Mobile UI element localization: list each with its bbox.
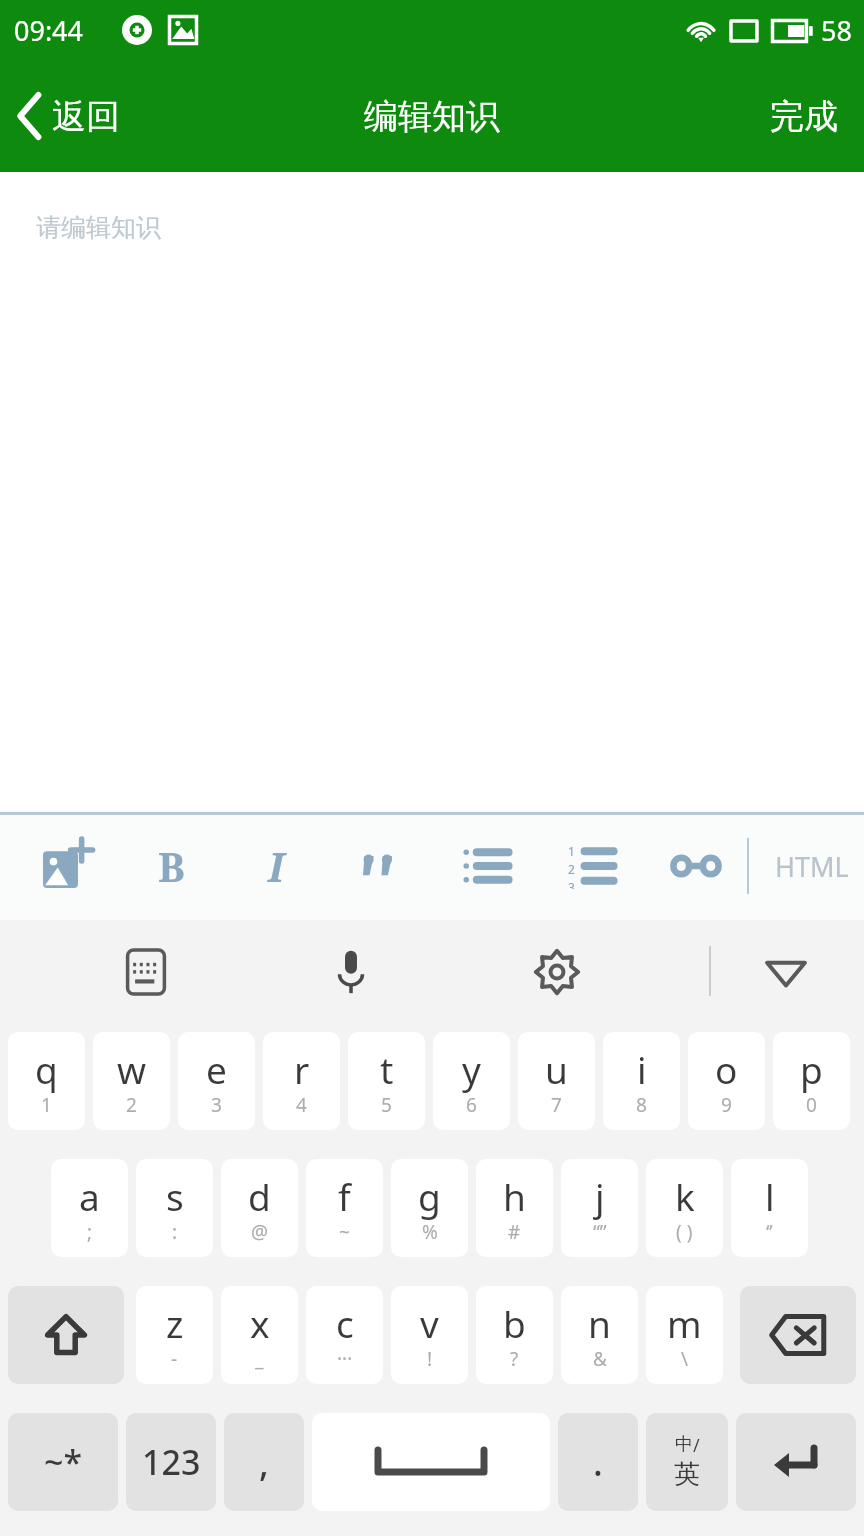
button[interactable]: m: [646, 1286, 723, 1384]
staticText: 返回: [52, 95, 120, 138]
button[interactable]: j: [561, 1159, 638, 1257]
button[interactable]: v: [391, 1286, 468, 1384]
button[interactable]: Link: [660, 830, 732, 902]
button[interactable]: e: [178, 1032, 255, 1130]
staticText: 2: [126, 1092, 137, 1118]
button[interactable]: x: [221, 1286, 298, 1384]
staticText: \: [681, 1346, 689, 1372]
staticText: l: [765, 1171, 775, 1221]
staticText: i: [637, 1044, 647, 1094]
staticText: ,: [259, 1438, 269, 1487]
button[interactable]: n: [561, 1286, 638, 1384]
staticText: 1: [41, 1092, 52, 1118]
staticText: 2: [568, 861, 575, 877]
button[interactable]: 完成: [744, 60, 864, 172]
staticText: d: [248, 1171, 271, 1221]
staticText: /: [693, 1433, 700, 1458]
button[interactable]: b: [476, 1286, 553, 1384]
button[interactable]: Comma: [224, 1413, 304, 1511]
staticText: ~: [339, 1219, 350, 1245]
staticText: 9: [721, 1092, 732, 1118]
button[interactable]: Insert image: [30, 830, 102, 902]
staticText: 3: [568, 879, 575, 889]
button[interactable]: c: [306, 1286, 383, 1384]
staticText: g: [418, 1171, 441, 1221]
button[interactable]: a: [51, 1159, 128, 1257]
staticText: h: [503, 1171, 526, 1221]
button[interactable]: HTML: [762, 830, 862, 902]
button[interactable]: Keyboard settings: [521, 936, 593, 1008]
staticText: m: [667, 1298, 702, 1348]
button[interactable]: u: [518, 1032, 595, 1130]
staticText: p: [800, 1044, 823, 1094]
staticText: 4: [296, 1092, 307, 1118]
staticText: e: [206, 1044, 227, 1094]
button[interactable]: w: [93, 1032, 170, 1130]
button[interactable]: o: [688, 1032, 765, 1130]
button[interactable]: Period: [558, 1413, 638, 1511]
button[interactable]: l: [731, 1159, 808, 1257]
button[interactable]: 返回: [0, 60, 146, 172]
button[interactable]: Bold: [135, 830, 207, 902]
button[interactable]: Voice input: [315, 936, 387, 1008]
staticText: f: [338, 1171, 351, 1221]
button[interactable]: Enter: [736, 1413, 856, 1511]
staticText: 编辑知识: [364, 95, 500, 138]
staticText: w: [117, 1044, 147, 1094]
button[interactable]: Switch Chinese English: [646, 1413, 728, 1511]
button[interactable]: q: [8, 1032, 85, 1130]
staticText: 1: [568, 843, 575, 859]
button[interactable]: Italic: [240, 830, 312, 902]
button[interactable]: g: [391, 1159, 468, 1257]
button[interactable]: Backspace: [740, 1286, 856, 1384]
staticText: #: [508, 1219, 521, 1245]
staticText: HTML: [775, 848, 849, 885]
button[interactable]: i: [603, 1032, 680, 1130]
staticText: 7: [551, 1092, 562, 1118]
button[interactable]: y: [433, 1032, 510, 1130]
button[interactable]: Keyboard layout: [110, 936, 182, 1008]
staticText: -: [171, 1346, 178, 1372]
staticText: ;: [87, 1219, 93, 1245]
button[interactable]: Symbols: [8, 1413, 118, 1511]
staticText: 3: [211, 1092, 222, 1118]
staticText: 09:44: [14, 12, 84, 49]
button[interactable]: Shift: [8, 1286, 124, 1384]
staticText: ( ): [676, 1219, 693, 1245]
staticText: c: [336, 1298, 354, 1348]
staticText: v: [420, 1298, 439, 1348]
staticText: a: [79, 1171, 100, 1221]
staticText: q: [35, 1044, 58, 1094]
staticText: ···: [337, 1346, 353, 1372]
button[interactable]: h: [476, 1159, 553, 1257]
staticText: :: [172, 1219, 178, 1245]
staticText: 请编辑知识: [36, 212, 161, 243]
staticText: !: [427, 1346, 433, 1372]
staticText: x: [250, 1298, 270, 1348]
button[interactable]: Numbered list: [555, 830, 627, 902]
button[interactable]: Quote: [345, 830, 417, 902]
staticText: 58: [821, 12, 852, 49]
staticText: s: [166, 1171, 184, 1221]
button[interactable]: f: [306, 1159, 383, 1257]
staticText: o: [715, 1044, 738, 1094]
button[interactable]: d: [221, 1159, 298, 1257]
button[interactable]: p: [773, 1032, 850, 1130]
staticText: 8: [636, 1092, 647, 1118]
button[interactable]: Space: [312, 1413, 550, 1511]
button[interactable]: r: [263, 1032, 340, 1130]
button[interactable]: k: [646, 1159, 723, 1257]
staticText: 0: [806, 1092, 817, 1118]
button[interactable]: s: [136, 1159, 213, 1257]
button[interactable]: Numbers: [126, 1413, 216, 1511]
staticText: .: [593, 1438, 603, 1487]
staticText: z: [166, 1298, 184, 1348]
staticText: 5: [381, 1092, 392, 1118]
button[interactable]: z: [136, 1286, 213, 1384]
button[interactable]: Bullet list: [450, 830, 522, 902]
staticText: &: [593, 1346, 607, 1372]
staticText: 完成: [770, 95, 838, 138]
staticText: ‘’: [766, 1219, 773, 1245]
button[interactable]: Hide keyboard: [750, 936, 822, 1008]
button[interactable]: t: [348, 1032, 425, 1130]
